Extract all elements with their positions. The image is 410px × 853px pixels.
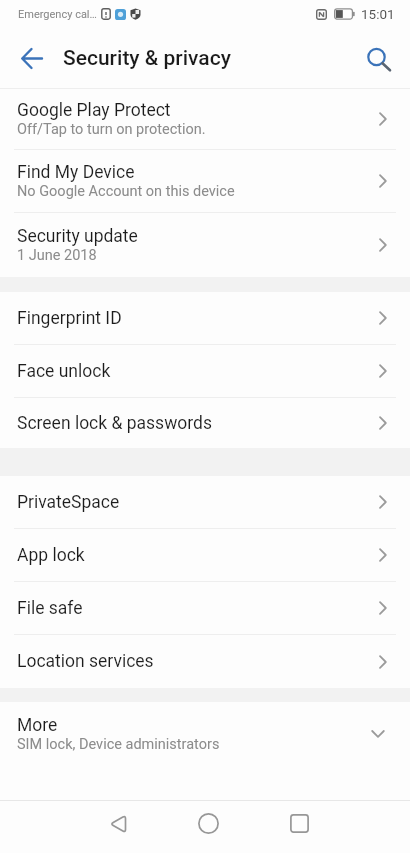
button[interactable]: Security update: [0, 213, 410, 277]
staticText: 1 June 2018: [17, 247, 97, 264]
button[interactable]: [355, 28, 401, 88]
staticText: Google Play Protect: [17, 100, 171, 121]
staticText: Face unlock: [17, 361, 111, 382]
staticText: Emergency cal…: [18, 8, 97, 21]
staticText: Location services: [17, 651, 154, 672]
staticText: 15:01: [361, 6, 395, 22]
button[interactable]: [72, 801, 163, 846]
button[interactable]: [8, 28, 56, 88]
button[interactable]: More: [0, 702, 410, 765]
button[interactable]: PrivateSpace: [0, 476, 410, 528]
button[interactable]: Fingerprint ID: [0, 292, 410, 344]
staticText: Find My Device: [17, 162, 135, 183]
button[interactable]: App lock: [0, 529, 410, 581]
staticText: Screen lock & passwords: [17, 413, 212, 434]
button[interactable]: Face unlock: [0, 345, 410, 397]
button[interactable]: Location services: [0, 635, 410, 688]
staticText: App lock: [17, 545, 85, 566]
button[interactable]: Find My Device: [0, 150, 410, 212]
staticText: Off/Tap to turn on protection.: [17, 121, 206, 138]
staticText: More: [17, 715, 58, 736]
staticText: No Google Account on this device: [17, 183, 235, 200]
button[interactable]: Google Play Protect: [0, 89, 410, 149]
button[interactable]: [254, 801, 345, 846]
staticText: Security & privacy: [63, 46, 231, 71]
button[interactable]: [163, 801, 254, 846]
staticText: Fingerprint ID: [17, 308, 122, 329]
staticText: File safe: [17, 598, 83, 619]
button[interactable]: Screen lock & passwords: [0, 398, 410, 448]
staticText: Security update: [17, 226, 138, 247]
staticText: SIM lock, Device administrators: [17, 736, 220, 753]
button[interactable]: File safe: [0, 582, 410, 634]
staticText: PrivateSpace: [17, 492, 120, 513]
